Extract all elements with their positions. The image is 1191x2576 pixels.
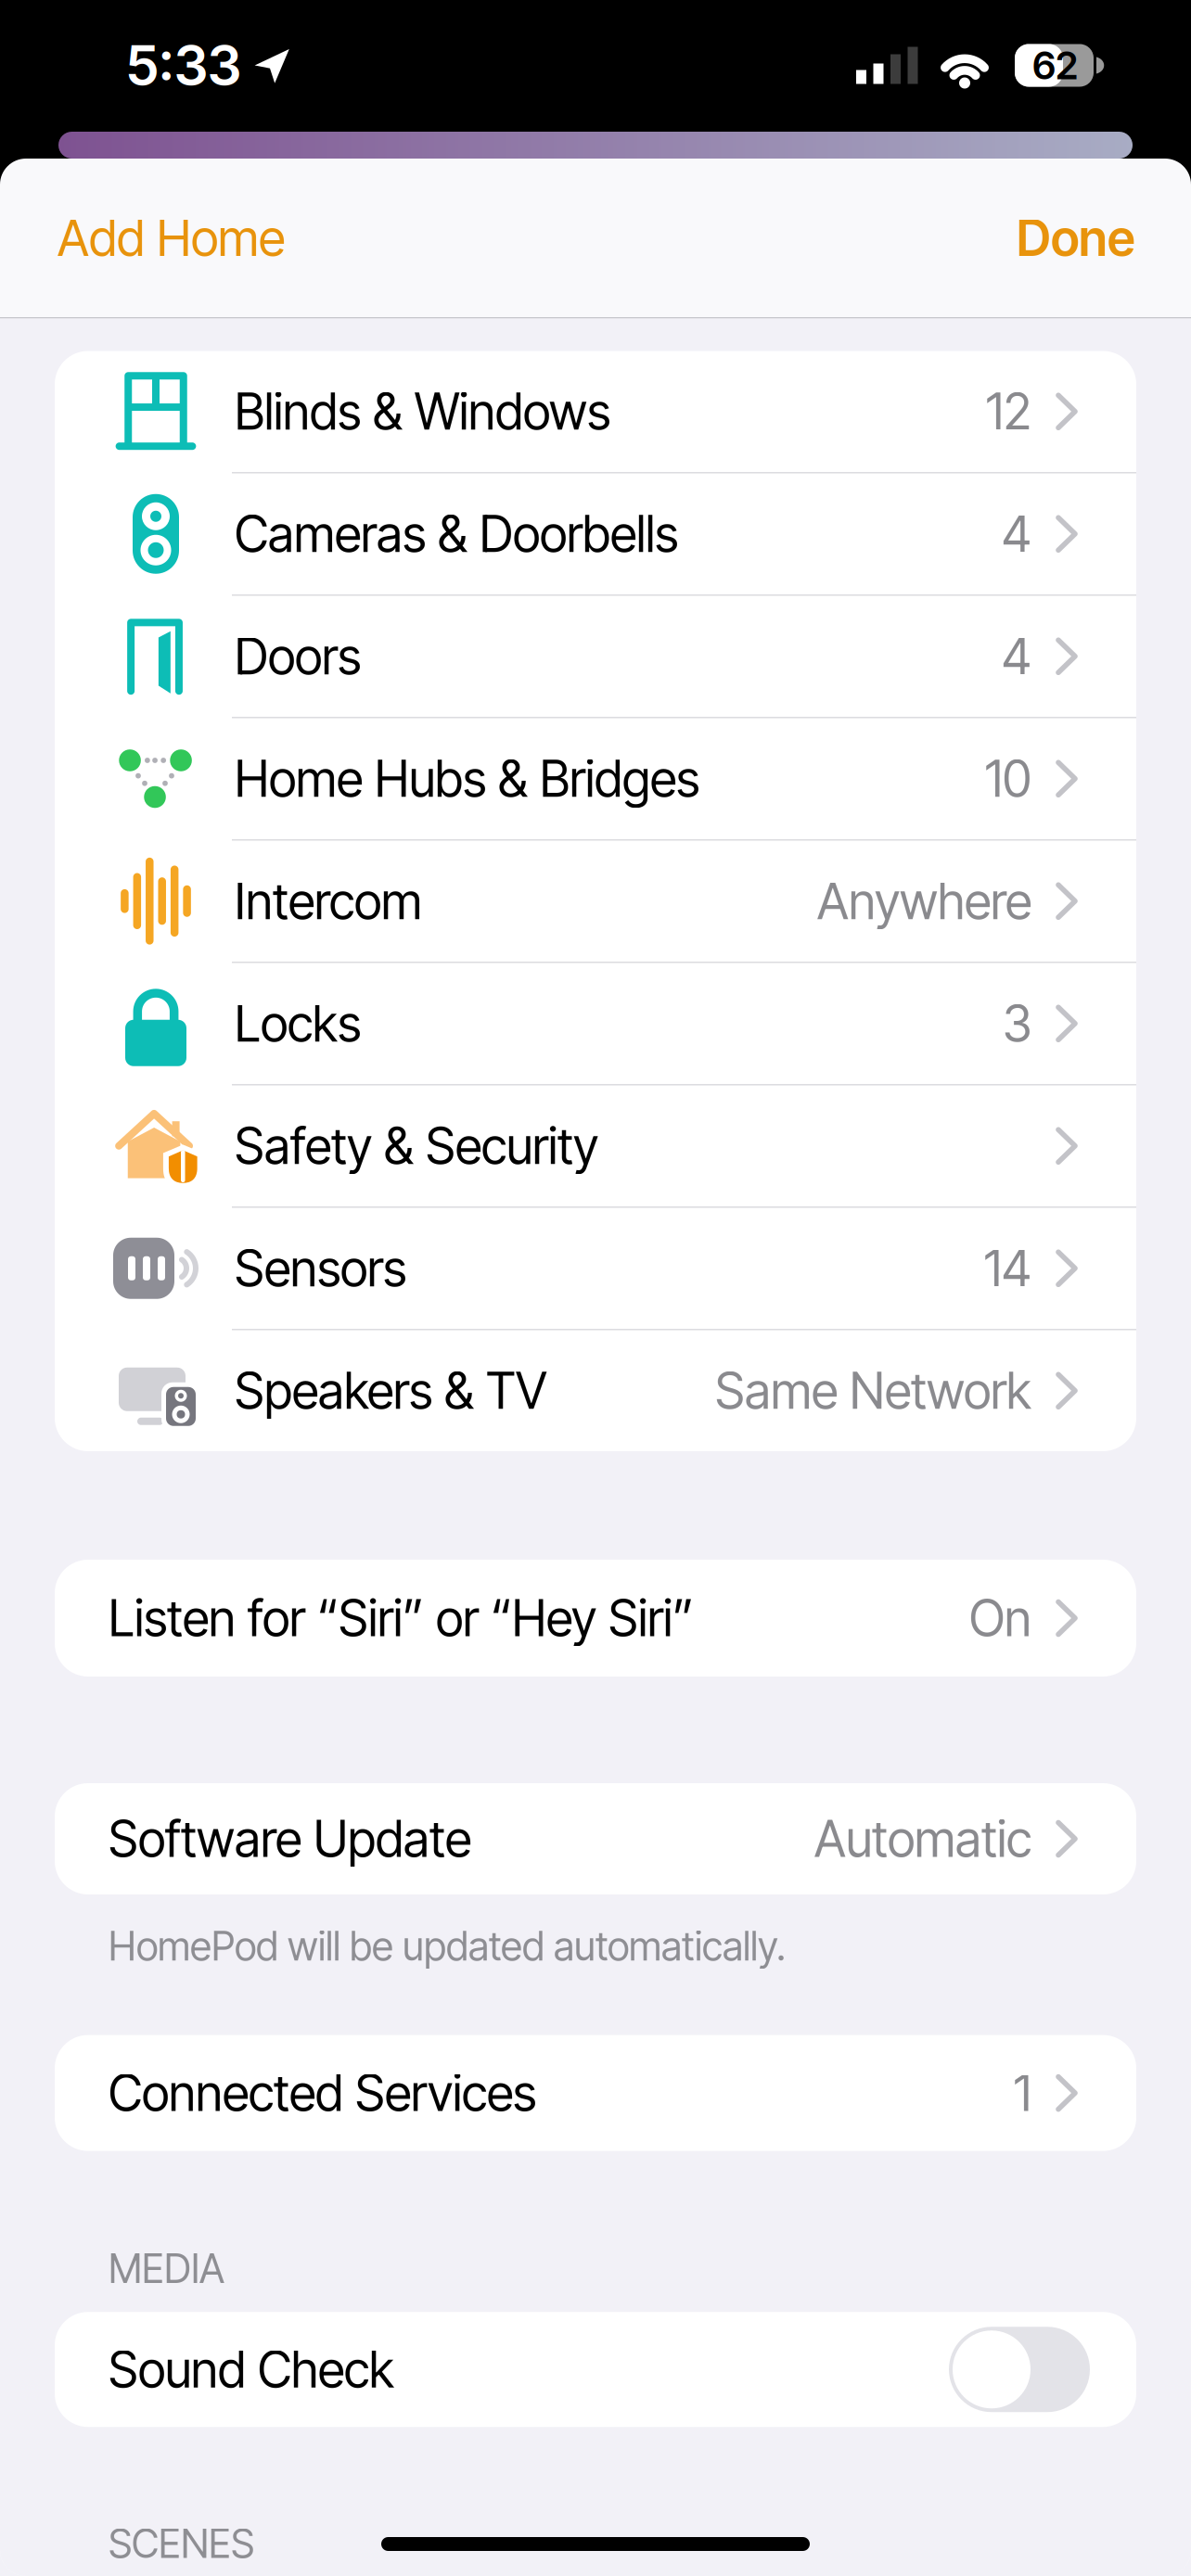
staticText: 4 — [1002, 504, 1031, 564]
staticText: 4 — [1002, 626, 1031, 686]
staticText: 5:33 — [126, 32, 241, 98]
staticText: SCENES — [109, 2520, 254, 2568]
staticText: Listen for “Siri” or “Hey Siri” — [109, 1588, 694, 1648]
staticText: Connected Services — [109, 2063, 536, 2123]
button[interactable]: Listen for “Siri” or “Hey Siri” — [55, 1560, 1136, 1677]
staticText: HomePod will be updated automatically. — [109, 1922, 786, 1970]
staticText: On — [969, 1588, 1031, 1648]
button[interactable]: Intercom — [55, 841, 1136, 962]
button[interactable]: Cameras & Doorbells — [55, 473, 1136, 594]
button[interactable]: Sensors — [55, 1208, 1136, 1329]
staticText: Automatic — [814, 1809, 1031, 1869]
staticText: 62 — [1032, 42, 1078, 89]
button[interactable]: Speakers & TV — [55, 1330, 1136, 1451]
button[interactable]: Connected Services — [55, 2035, 1136, 2151]
staticText: Intercom — [235, 871, 422, 931]
staticText: 1 — [1014, 2063, 1031, 2123]
staticText: Done — [1017, 208, 1135, 268]
button[interactable]: Home Hubs & Bridges — [55, 718, 1136, 839]
staticText: 10 — [985, 749, 1031, 809]
button[interactable]: Locks — [55, 963, 1136, 1084]
button[interactable]: Add Home — [58, 208, 285, 268]
staticText: MEDIA — [109, 2245, 224, 2292]
staticText: Blinds & Windows — [235, 382, 610, 441]
staticText: Anywhere — [817, 871, 1031, 931]
staticText: Locks — [235, 994, 361, 1053]
staticText: Add Home — [58, 208, 285, 268]
button[interactable]: Sound Check — [949, 2327, 1090, 2412]
staticText: 12 — [986, 382, 1031, 441]
staticText: Safety & Security — [235, 1116, 598, 1176]
button[interactable]: Blinds & Windows — [55, 351, 1136, 472]
button[interactable]: Software Update — [55, 1783, 1136, 1894]
button[interactable]: Done — [1017, 208, 1135, 268]
staticText: 3 — [1003, 994, 1031, 1053]
staticText: Speakers & TV — [235, 1361, 547, 1421]
staticText: Doors — [235, 626, 361, 686]
staticText: Sound Check — [109, 2340, 394, 2399]
button[interactable]: Doors — [55, 596, 1136, 717]
staticText: 14 — [984, 1238, 1031, 1298]
staticText: Same Network — [715, 1361, 1031, 1421]
staticText: Software Update — [109, 1809, 471, 1869]
staticText: Cameras & Doorbells — [235, 504, 678, 564]
button[interactable]: Safety & Security — [55, 1085, 1136, 1206]
staticText: Sensors — [235, 1238, 406, 1298]
staticText: Home Hubs & Bridges — [235, 749, 699, 809]
